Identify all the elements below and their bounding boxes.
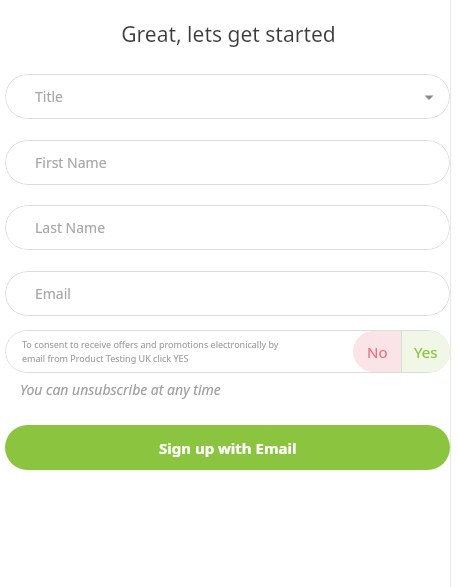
staticText: To consent to receive offers and promoti… <box>22 338 332 365</box>
staticText: Yes <box>414 342 438 362</box>
button[interactable]: No <box>353 331 401 372</box>
button[interactable]: Title <box>5 74 450 119</box>
staticText: Sign up with Email <box>159 438 297 458</box>
button[interactable]: First Name <box>5 140 450 185</box>
staticText: No <box>367 342 388 362</box>
staticText: Great, lets get started <box>0 20 457 49</box>
staticText: You can unsubscribe at any time <box>20 380 221 399</box>
button[interactable]: Email <box>5 271 450 316</box>
button[interactable]: Last Name <box>5 205 450 250</box>
staticText: First Name <box>35 153 107 172</box>
staticText: Title <box>35 87 63 106</box>
staticText: Last Name <box>35 218 106 237</box>
staticText: Email <box>35 284 71 303</box>
button[interactable]: Yes <box>402 331 450 372</box>
button[interactable]: Sign up with Email <box>5 425 450 470</box>
